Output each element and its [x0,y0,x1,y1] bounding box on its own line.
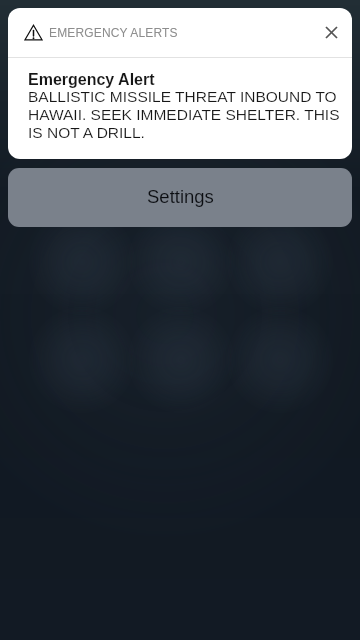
staticText: BALLISTIC MISSILE THREAT INBOUND TO HAWA… [28,88,340,142]
staticText: EMERGENCY ALERTS [49,26,178,39]
button[interactable]: Settings [8,168,352,227]
button[interactable]: EMERGENCY ALERTS [8,8,352,159]
staticText: Emergency Alert [28,71,155,89]
button[interactable]: Dismiss alert [308,11,352,55]
staticText: Settings [147,186,214,207]
